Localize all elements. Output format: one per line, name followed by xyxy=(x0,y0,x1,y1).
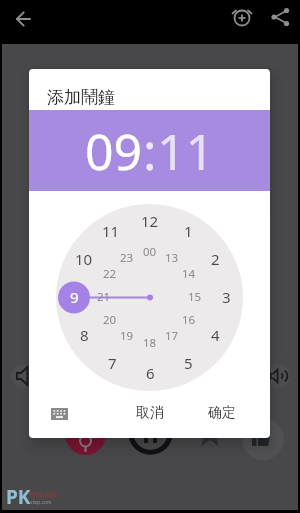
staticText: 11 xyxy=(102,221,120,241)
staticText: 22 xyxy=(103,266,117,282)
button[interactable]: 取消 xyxy=(110,401,190,425)
staticText: 11 xyxy=(157,117,215,185)
staticText: : xyxy=(143,117,157,185)
staticText: 添加鬧鐘 xyxy=(47,87,115,108)
staticText: 16 xyxy=(182,312,196,328)
staticText: 18 xyxy=(143,335,157,351)
staticText: 确定 xyxy=(208,404,236,422)
button[interactable] xyxy=(11,364,35,388)
button[interactable]: 确定 xyxy=(182,401,262,425)
staticText: 8 xyxy=(80,325,89,345)
staticText: 9 xyxy=(70,287,79,307)
staticText: 23 xyxy=(120,250,134,266)
staticText: step.com xyxy=(30,499,52,506)
staticText: 6 xyxy=(146,363,155,383)
staticText: 09 xyxy=(85,117,143,185)
staticText: 3 xyxy=(222,287,231,307)
staticText: 7 xyxy=(108,353,117,373)
button[interactable] xyxy=(242,418,284,460)
button[interactable] xyxy=(195,419,225,449)
staticText: 20 xyxy=(103,312,117,328)
staticText: 15 xyxy=(188,289,202,305)
staticText: 痞凱踹踹 xyxy=(29,490,57,499)
button[interactable] xyxy=(266,364,290,388)
staticText: PK xyxy=(6,484,31,510)
button[interactable] xyxy=(268,5,294,31)
staticText: 5 xyxy=(184,353,193,373)
staticText: 13 xyxy=(165,250,179,266)
staticText: 4 xyxy=(211,325,220,345)
button[interactable] xyxy=(9,7,35,33)
staticText: 2 xyxy=(211,249,220,269)
staticText: 1 xyxy=(184,221,193,241)
button[interactable] xyxy=(128,410,173,455)
staticText: 00 xyxy=(143,244,157,260)
staticText: 14 xyxy=(182,266,196,282)
button[interactable] xyxy=(65,414,106,455)
staticText: 17 xyxy=(165,328,179,344)
staticText: 12 xyxy=(141,211,159,231)
staticText: 10 xyxy=(75,249,93,269)
staticText: 21 xyxy=(97,289,111,305)
button[interactable] xyxy=(51,408,68,420)
staticText: 取消 xyxy=(136,404,164,422)
button[interactable] xyxy=(229,4,255,30)
staticText: 19 xyxy=(120,328,134,344)
